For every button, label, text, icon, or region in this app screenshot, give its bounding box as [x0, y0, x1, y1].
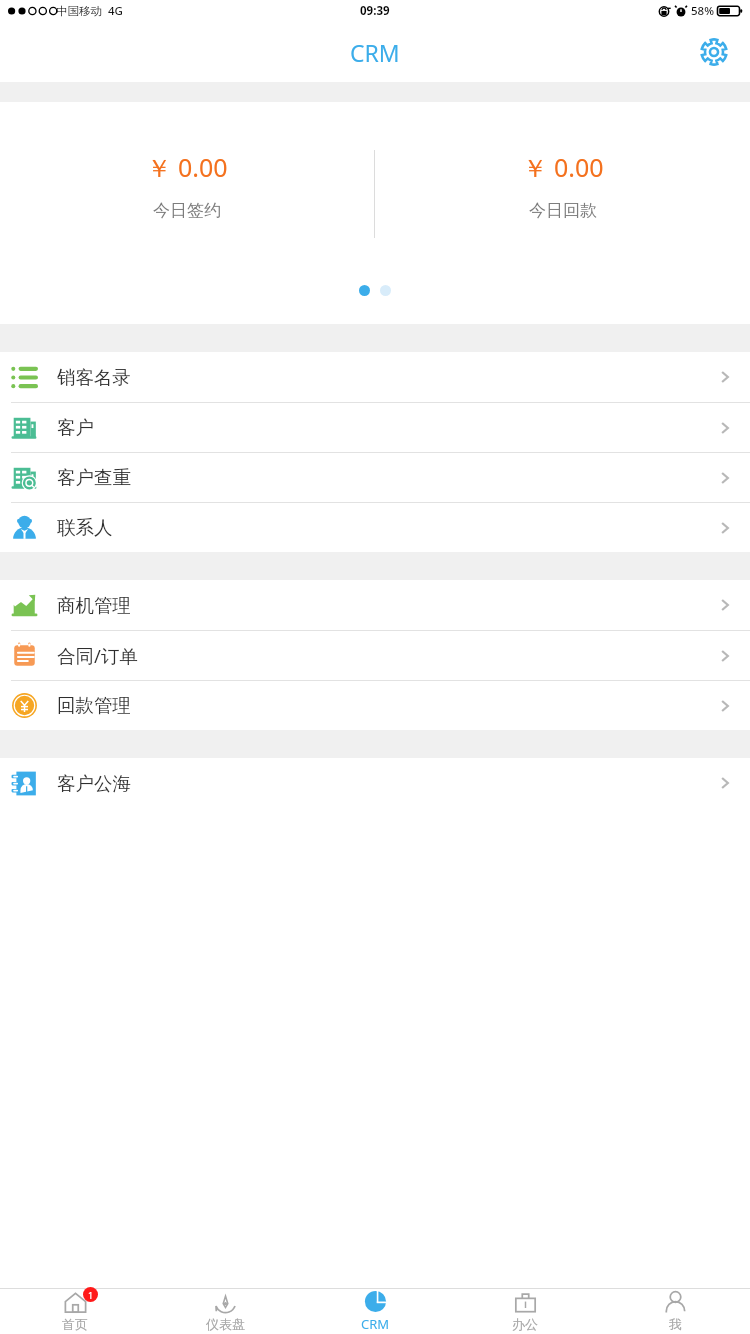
- staticText: 销客名录: [57, 366, 131, 389]
- button[interactable]: 合同/订单: [0, 630, 750, 680]
- staticText: 办公: [512, 1316, 538, 1332]
- button[interactable]: ￥ 0.00: [0, 150, 374, 221]
- staticText: 09:39: [360, 3, 390, 19]
- button[interactable]: ￥ 0.00: [375, 150, 750, 221]
- staticText: 4G: [108, 3, 123, 19]
- button[interactable]: 商机管理: [0, 580, 750, 630]
- button[interactable]: Settings: [692, 30, 736, 74]
- button[interactable]: 回款管理: [0, 680, 750, 730]
- staticText: 回款管理: [57, 694, 131, 717]
- staticText: 客户公海: [57, 772, 131, 795]
- staticText: 首页: [62, 1316, 88, 1332]
- staticText: 客户: [57, 416, 94, 439]
- button[interactable]: 1: [0, 1289, 150, 1334]
- button[interactable]: 销客名录: [0, 352, 750, 402]
- staticText: 我: [669, 1316, 682, 1332]
- button[interactable]: 我: [600, 1289, 750, 1334]
- button[interactable]: 客户查重: [0, 452, 750, 502]
- button[interactable]: 客户公海: [0, 758, 750, 808]
- staticText: 合同/订单: [57, 643, 138, 668]
- staticText: 今日回款: [529, 200, 597, 221]
- button[interactable]: 联系人: [0, 502, 750, 552]
- staticText: 客户查重: [57, 466, 131, 489]
- staticText: ￥ 0.00: [522, 150, 604, 184]
- staticText: 今日签约: [153, 200, 221, 221]
- staticText: 仪表盘: [206, 1316, 245, 1332]
- button[interactable]: CRM: [300, 1289, 450, 1334]
- staticText: 1: [88, 1289, 94, 1301]
- button[interactable]: 客户: [0, 402, 750, 452]
- staticText: 商机管理: [57, 594, 131, 617]
- staticText: CRM: [350, 37, 400, 68]
- staticText: 58%: [691, 3, 714, 19]
- staticText: 联系人: [57, 516, 113, 539]
- staticText: 中国移动: [56, 4, 102, 18]
- staticText: CRM: [361, 1315, 390, 1333]
- button[interactable]: 办公: [450, 1289, 600, 1334]
- staticText: ￥ 0.00: [146, 150, 228, 184]
- button[interactable]: 仪表盘: [150, 1289, 300, 1334]
